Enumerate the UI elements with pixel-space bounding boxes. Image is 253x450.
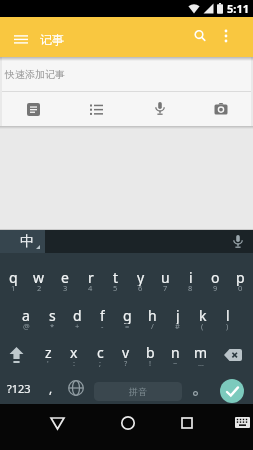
button[interactable]: - <box>90 317 115 335</box>
button[interactable]: o <box>203 268 228 286</box>
button[interactable]: 4 <box>78 279 103 297</box>
staticText: ~ <box>173 358 178 368</box>
staticText: j <box>176 306 180 324</box>
button[interactable]: m <box>188 343 213 361</box>
button[interactable]: ?123 <box>0 372 38 404</box>
button[interactable]: z <box>35 343 61 361</box>
button[interactable]: 3 <box>52 279 78 297</box>
button[interactable]: ( <box>190 317 215 335</box>
button[interactable]: g <box>115 306 140 324</box>
button[interactable] <box>231 411 253 433</box>
staticText: e <box>61 268 69 286</box>
button[interactable] <box>220 379 244 403</box>
staticText: 0 <box>238 283 243 293</box>
button[interactable]: v <box>113 343 138 361</box>
staticText: z <box>45 343 52 361</box>
button[interactable]: 7 <box>153 279 178 297</box>
button[interactable]: e <box>52 268 78 286</box>
button[interactable]: b <box>138 343 163 361</box>
button[interactable]: i <box>178 268 203 286</box>
button[interactable]: 9 <box>203 279 228 297</box>
button[interactable]: … <box>188 354 213 372</box>
button[interactable] <box>111 406 145 440</box>
button[interactable]: / <box>140 317 165 335</box>
button[interactable] <box>183 377 208 409</box>
button[interactable]: 8 <box>178 279 203 297</box>
button[interactable]: q <box>0 268 26 286</box>
button[interactable]: n <box>163 343 188 361</box>
button[interactable] <box>216 336 250 374</box>
staticText: 2 <box>37 283 42 293</box>
button[interactable]: x <box>61 343 87 361</box>
staticText: c <box>97 343 104 361</box>
button[interactable]: ' <box>35 354 61 372</box>
button[interactable] <box>170 406 204 440</box>
button[interactable]: # <box>165 317 190 335</box>
button[interactable] <box>209 19 243 53</box>
staticText: 中 <box>20 233 34 251</box>
button[interactable]: * <box>39 317 65 335</box>
button[interactable]: y <box>128 268 153 286</box>
button[interactable]: ! <box>138 354 163 372</box>
button[interactable]: t <box>103 268 128 286</box>
staticText: f <box>100 306 105 324</box>
button[interactable] <box>0 335 33 375</box>
button[interactable]: 6 <box>128 279 153 297</box>
staticText: s <box>49 306 56 324</box>
button[interactable]: : <box>61 354 87 372</box>
button[interactable] <box>128 92 191 126</box>
button[interactable]: j <box>165 306 190 324</box>
button[interactable]: + <box>65 317 90 335</box>
staticText: k <box>199 306 207 324</box>
staticText: ( <box>201 321 204 331</box>
button[interactable] <box>226 230 249 253</box>
staticText: * <box>50 321 55 331</box>
button[interactable]: 快速添加记事 <box>2 57 251 91</box>
button[interactable]: = <box>115 317 140 335</box>
button[interactable]: 2 <box>26 279 52 297</box>
button[interactable]: a <box>13 306 39 324</box>
button[interactable]: , <box>38 372 63 404</box>
button[interactable]: h <box>140 306 165 324</box>
button[interactable]: c <box>87 343 113 361</box>
button[interactable] <box>2 92 65 126</box>
staticText: : <box>73 358 76 368</box>
staticText: 5 <box>113 283 118 293</box>
button[interactable]: s <box>39 306 65 324</box>
button[interactable]: ) <box>215 317 240 335</box>
button[interactable]: l <box>215 306 240 324</box>
button[interactable]: ; <box>87 354 113 372</box>
staticText: g <box>123 306 132 324</box>
button[interactable]: ~ <box>163 354 188 372</box>
button[interactable]: u <box>153 268 178 286</box>
button[interactable] <box>65 92 128 126</box>
button[interactable]: 0 <box>228 279 253 297</box>
button[interactable]: ? <box>113 354 138 372</box>
staticText: 7 <box>163 283 168 293</box>
staticText: v <box>122 343 130 361</box>
staticText: @ <box>23 321 30 331</box>
button[interactable]: 5 <box>103 279 128 297</box>
staticText: 9 <box>213 283 218 293</box>
button[interactable]: 1 <box>0 279 26 297</box>
button[interactable]: @ <box>13 317 39 335</box>
button[interactable] <box>40 406 74 440</box>
staticText: ; <box>99 358 102 368</box>
button[interactable] <box>63 372 89 404</box>
button[interactable] <box>0 230 45 253</box>
staticText: 3 <box>63 283 68 293</box>
button[interactable] <box>191 92 251 126</box>
button[interactable]: w <box>26 268 52 286</box>
button[interactable]: f <box>90 306 115 324</box>
button[interactable]: r <box>78 268 103 286</box>
button[interactable]: p <box>228 268 253 286</box>
button[interactable]: d <box>65 306 90 324</box>
button[interactable] <box>4 22 38 56</box>
button[interactable]: k <box>190 306 215 324</box>
staticText: a <box>22 306 30 324</box>
button[interactable]: 拼音 <box>94 382 182 401</box>
staticText: 1 <box>11 283 16 293</box>
button[interactable] <box>183 19 217 53</box>
staticText: m <box>194 343 208 361</box>
staticText: r <box>88 268 94 286</box>
